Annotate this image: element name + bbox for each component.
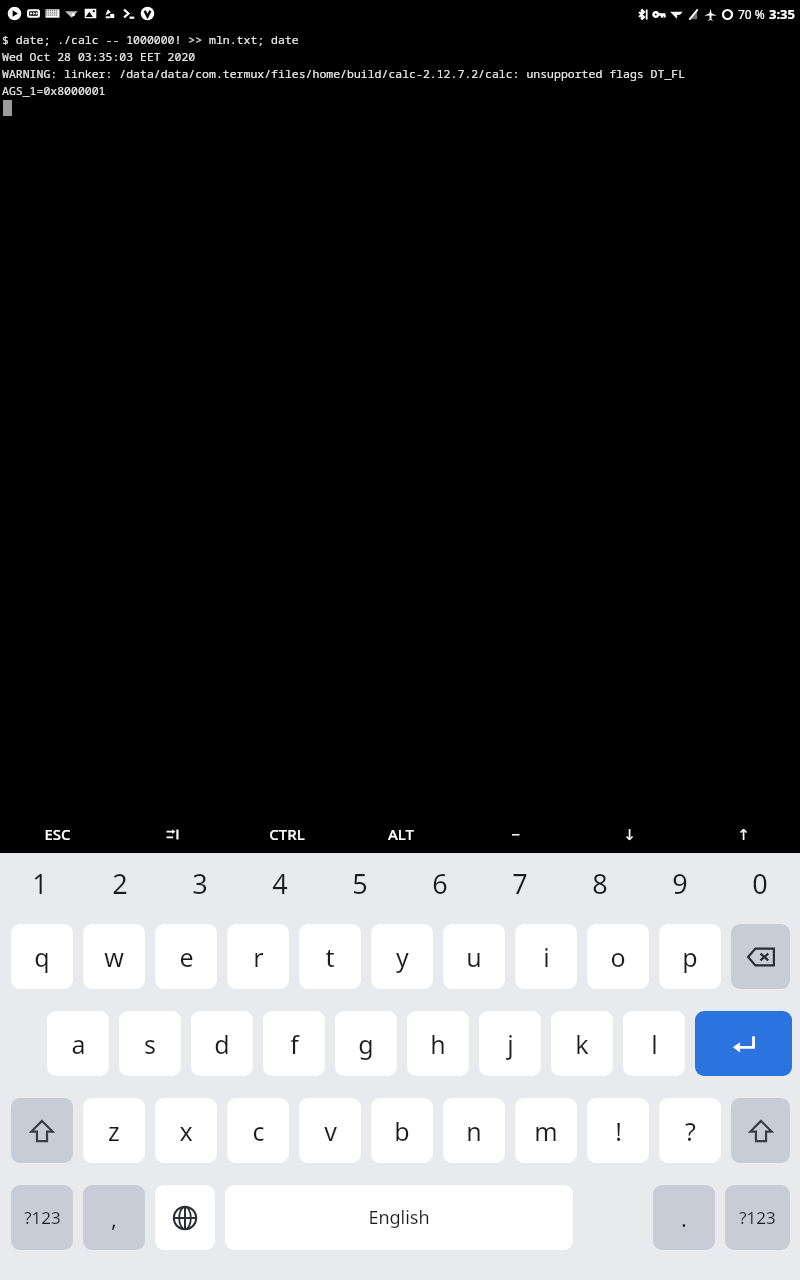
button[interactable]: v xyxy=(299,1098,361,1163)
staticText: CTRL xyxy=(269,824,305,844)
button[interactable]: Shift xyxy=(11,1098,73,1163)
staticText: − xyxy=(511,824,520,844)
button[interactable]: ESC xyxy=(0,815,115,853)
button[interactable]: c xyxy=(227,1098,289,1163)
button[interactable]: g xyxy=(335,1011,397,1076)
button[interactable]: s xyxy=(119,1011,181,1076)
staticText: Wed Oct 28 03:35:03 EET 2020 xyxy=(2,49,196,65)
button[interactable]: u xyxy=(443,924,505,989)
button[interactable]: a xyxy=(47,1011,109,1076)
button[interactable]: p xyxy=(659,924,721,989)
button[interactable]: n xyxy=(443,1098,505,1163)
button[interactable]: y xyxy=(371,924,433,989)
button[interactable]: Tab xyxy=(115,815,230,853)
staticText: $ date; ./calc -- 1000000! >> mln.txt; d… xyxy=(2,32,299,48)
button[interactable]: ! xyxy=(587,1098,649,1163)
button[interactable]: CTRL xyxy=(230,815,344,853)
staticText: AGS_1=0x8000001 xyxy=(2,83,106,99)
staticText: y xyxy=(396,940,409,974)
button[interactable]: w xyxy=(83,924,145,989)
staticText: i xyxy=(543,940,550,974)
staticText: ↓ xyxy=(623,826,636,843)
button[interactable]: 4 xyxy=(240,853,320,913)
staticText: 8 xyxy=(592,865,608,902)
staticText: ?123 xyxy=(24,1206,61,1229)
staticText: , xyxy=(111,1203,117,1233)
staticText: ! xyxy=(615,1114,622,1148)
staticText: q xyxy=(34,940,50,974)
button[interactable]: z xyxy=(83,1098,145,1163)
button[interactable]: 1 xyxy=(0,853,80,913)
staticText: p xyxy=(682,940,698,974)
staticText: 0 xyxy=(752,865,768,902)
staticText: t xyxy=(325,940,335,974)
button[interactable]: 0 xyxy=(720,853,800,913)
button[interactable]: o xyxy=(587,924,649,989)
staticText: o xyxy=(610,940,626,974)
staticText: n xyxy=(466,1114,482,1148)
button[interactable]: − xyxy=(458,815,572,853)
button[interactable]: 3 xyxy=(160,853,240,913)
staticText: English xyxy=(368,1205,430,1230)
button[interactable]: l xyxy=(623,1011,685,1076)
staticText: . xyxy=(681,1203,687,1233)
staticText: u xyxy=(466,940,482,974)
staticText: 4 xyxy=(272,865,288,902)
staticText: 3:35 xyxy=(769,5,795,23)
button[interactable]: q xyxy=(11,924,73,989)
staticText: x xyxy=(179,1114,193,1148)
button[interactable]: ↑ xyxy=(686,815,800,853)
staticText: 7 xyxy=(512,865,528,902)
button[interactable]: 2 xyxy=(80,853,160,913)
staticText: h xyxy=(430,1027,446,1061)
button[interactable]: e xyxy=(155,924,217,989)
button[interactable]: ↓ xyxy=(572,815,686,853)
button[interactable]: 5 xyxy=(320,853,400,913)
button[interactable]: , xyxy=(83,1185,145,1250)
button[interactable]: . xyxy=(653,1185,715,1250)
button[interactable]: m xyxy=(515,1098,577,1163)
staticText: d xyxy=(214,1027,230,1061)
staticText: w xyxy=(104,940,124,974)
button[interactable]: h xyxy=(407,1011,469,1076)
staticText: 2 xyxy=(112,865,128,902)
staticText: 1 xyxy=(32,865,48,902)
button[interactable]: Change language xyxy=(155,1185,215,1250)
button[interactable]: 8 xyxy=(560,853,640,913)
staticText: m xyxy=(534,1114,558,1148)
staticText: ↑ xyxy=(737,826,750,843)
button[interactable]: English xyxy=(225,1185,573,1250)
button[interactable]: d xyxy=(191,1011,253,1076)
button[interactable]: x xyxy=(155,1098,217,1163)
button[interactable]: k xyxy=(551,1011,613,1076)
button[interactable]: f xyxy=(263,1011,325,1076)
button[interactable]: 9 xyxy=(640,853,720,913)
staticText: j xyxy=(507,1027,514,1061)
button[interactable]: ?123 xyxy=(725,1185,790,1250)
staticText: v xyxy=(324,1114,337,1148)
staticText: WARNING: linker: /data/data/com.termux/f… xyxy=(2,66,686,82)
button[interactable]: ?123 xyxy=(11,1185,73,1250)
staticText: e xyxy=(179,940,194,974)
button[interactable]: Enter xyxy=(695,1011,792,1076)
staticText: ? xyxy=(685,1114,696,1148)
staticText: z xyxy=(108,1114,120,1148)
button[interactable]: 6 xyxy=(400,853,480,913)
staticText: 5 xyxy=(352,865,368,902)
button[interactable]: b xyxy=(371,1098,433,1163)
staticText: 70 % xyxy=(738,6,765,22)
button[interactable]: ALT xyxy=(344,815,458,853)
button[interactable]: j xyxy=(479,1011,541,1076)
button[interactable]: Backspace xyxy=(731,924,790,989)
button[interactable]: r xyxy=(227,924,289,989)
staticText: ?123 xyxy=(739,1206,776,1229)
staticText: f xyxy=(290,1027,299,1061)
button[interactable]: t xyxy=(299,924,361,989)
staticText: r xyxy=(253,940,264,974)
button[interactable]: Shift xyxy=(731,1098,790,1163)
button[interactable]: ? xyxy=(659,1098,721,1163)
staticText: l xyxy=(651,1027,658,1061)
button[interactable]: 7 xyxy=(480,853,560,913)
staticText: s xyxy=(144,1027,156,1061)
button[interactable]: i xyxy=(515,924,577,989)
